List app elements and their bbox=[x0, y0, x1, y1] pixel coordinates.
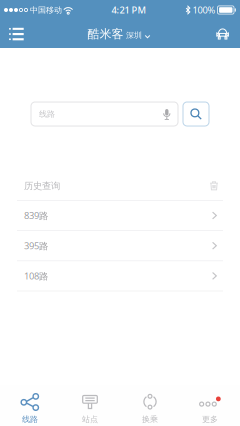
button[interactable]: Bus routes bbox=[195, 20, 240, 48]
staticText: 线路 bbox=[39, 109, 55, 119]
button[interactable]: 108路 bbox=[0, 261, 240, 291]
button[interactable]: 更多 bbox=[180, 385, 240, 426]
button[interactable]: 换乘 bbox=[120, 385, 180, 426]
button[interactable]: 线路 bbox=[0, 385, 60, 426]
staticText: 更多 bbox=[202, 414, 218, 424]
button[interactable]: 395路 bbox=[0, 231, 240, 261]
staticText: 839路 bbox=[24, 209, 48, 222]
staticText: 站点 bbox=[82, 414, 98, 424]
staticText: 线路 bbox=[22, 414, 38, 424]
staticText: 4:21 PM bbox=[111, 4, 146, 16]
button[interactable]: Menu bbox=[0, 20, 43, 48]
button[interactable]: 酷米客 bbox=[88, 21, 150, 47]
staticText: 中国移动 bbox=[28, 5, 64, 15]
staticText: 395路 bbox=[24, 239, 48, 252]
button[interactable]: 839路 bbox=[0, 201, 240, 231]
button[interactable]: Search bbox=[183, 102, 209, 126]
staticText: 酷米客 bbox=[88, 27, 124, 41]
staticText: 历史查询 bbox=[24, 180, 60, 192]
staticText: 换乘 bbox=[142, 414, 158, 424]
staticText: 深圳 bbox=[126, 30, 142, 40]
staticText: 100% bbox=[190, 4, 217, 16]
staticText: 108路 bbox=[24, 270, 48, 282]
button[interactable]: Clear history bbox=[205, 179, 223, 195]
button[interactable]: 站点 bbox=[60, 385, 120, 426]
